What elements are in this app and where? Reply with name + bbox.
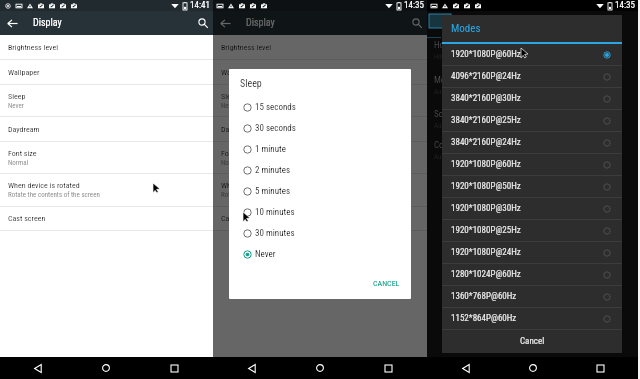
staticText: Display (33, 17, 62, 29)
staticText: 1920*1080P@50Hz (451, 181, 521, 192)
staticText: 1280*1024P@60Hz (451, 269, 521, 280)
staticText: CANCEL (373, 279, 400, 288)
button[interactable]: 1360*768P@60Hz (442, 286, 622, 307)
button[interactable]: 1920*1080P@50Hz (442, 176, 622, 197)
button[interactable]: 30 seconds (229, 118, 411, 139)
staticText: Rotate the contents of the screen (221, 191, 313, 199)
button[interactable]: Brightness level (0, 35, 213, 59)
staticText: 1920*1080P@60Hz (451, 159, 521, 170)
button[interactable]: Sleep (0, 85, 213, 116)
staticText: Cast screen (221, 214, 259, 223)
button[interactable]: Recent apps (163, 357, 185, 379)
button[interactable]: 1920*1080P@25Hz (442, 220, 622, 241)
staticText: 3840*2160P@24Hz (451, 137, 521, 148)
staticText: 14:41 (190, 0, 210, 11)
staticText: 1152*864P@60Hz (451, 313, 517, 324)
button[interactable]: 3840*2160P@25Hz (442, 110, 622, 131)
staticText: Never (221, 102, 237, 110)
button[interactable]: Wallpaper (0, 60, 213, 84)
staticText: Normal (8, 159, 29, 167)
button[interactable]: Daydream (213, 117, 427, 141)
button[interactable]: 2 minutes (229, 160, 411, 181)
button[interactable]: Recent apps (589, 357, 611, 379)
staticText: When device is rotated (221, 181, 293, 190)
button[interactable]: 1280*1024P@60Hz (442, 264, 622, 285)
button[interactable]: Sleep (213, 85, 427, 116)
staticText: 2 minutes (255, 165, 291, 176)
button[interactable]: 15 seconds (229, 97, 411, 118)
button[interactable]: 3840*2160P@24Hz (442, 132, 622, 153)
staticText: Daydream (8, 125, 40, 134)
button[interactable]: Never (229, 244, 411, 265)
staticText: 4096*2160P@24Hz (451, 71, 521, 82)
button[interactable]: Back (241, 357, 263, 379)
button[interactable]: Daydream (0, 117, 213, 141)
staticText: Auto (434, 153, 447, 161)
staticText: 14:35 (404, 0, 424, 11)
staticText: Display (246, 17, 275, 29)
button[interactable]: Cast screen (213, 207, 427, 230)
button[interactable]: Navigate up (213, 11, 237, 35)
button[interactable]: 4096*2160P@24Hz (442, 66, 622, 87)
button[interactable]: 1920*1080P@30Hz (442, 198, 622, 219)
staticText: Never (8, 102, 24, 110)
staticText: Screen (434, 109, 459, 120)
staticText: 30 seconds (255, 123, 296, 134)
staticText: Cast screen (8, 214, 46, 223)
button[interactable]: 10 minutes (229, 202, 411, 223)
staticText: Sleep (240, 78, 262, 90)
staticText: Cancel (520, 336, 545, 347)
button[interactable]: When device is rotated (0, 174, 213, 206)
staticText: Sleep (221, 92, 239, 101)
staticText: Normal (221, 159, 242, 167)
staticText: 1920*1080P@25Hz (451, 225, 521, 236)
staticText: Daydream (221, 125, 253, 134)
staticText: Modes (451, 22, 481, 35)
staticText: 3840*2160P@30Hz (451, 93, 521, 104)
button[interactable]: Brightness level (213, 35, 427, 59)
staticText: 14:35 (404, 0, 424, 11)
button[interactable]: Search (407, 11, 427, 35)
button[interactable]: Font size (213, 142, 427, 173)
button[interactable]: 5 minutes (229, 181, 411, 202)
button[interactable]: 30 minutes (229, 223, 411, 244)
staticText: Rotate the contents of the screen (8, 191, 100, 199)
staticText: Font size (221, 149, 250, 158)
staticText: 3840*2160P@25Hz (451, 115, 521, 126)
button[interactable]: CANCEL (362, 274, 411, 293)
button[interactable]: Wallpaper (213, 60, 427, 84)
staticText: Wallpaper (221, 68, 253, 77)
staticText: 10 minutes (255, 207, 295, 218)
staticText: Hdmi output (434, 53, 469, 61)
staticText: 15 seconds (255, 102, 296, 113)
button[interactable]: 3840*2160P@30Hz (442, 88, 622, 109)
staticText: Colour (434, 140, 458, 151)
staticText: Font size (8, 149, 37, 158)
button[interactable]: Cancel (442, 330, 622, 353)
button[interactable]: Navigate up (0, 11, 24, 35)
button[interactable]: 1 minute (229, 139, 411, 160)
button[interactable]: 1920*1080P@24Hz (442, 242, 622, 263)
button[interactable]: Home (522, 357, 544, 379)
button[interactable]: Home (95, 357, 117, 379)
button[interactable]: Recent apps (377, 357, 399, 379)
button[interactable]: Back (27, 357, 49, 379)
staticText: 1 minute (255, 144, 286, 155)
button[interactable]: Home (309, 357, 331, 379)
staticText: 1920*1080P@60Hz (451, 49, 521, 60)
staticText: Auto (434, 122, 447, 130)
button[interactable]: Cast screen (0, 207, 213, 230)
button[interactable]: 1920*1080P@60Hz (442, 44, 622, 65)
button[interactable]: When device is rotated (213, 174, 427, 206)
staticText: 1920*1080P@24Hz (451, 247, 521, 258)
button[interactable]: Back (455, 357, 477, 379)
button[interactable]: 1152*864P@60Hz (442, 308, 622, 329)
staticText: Mode (434, 75, 454, 86)
staticText: 1920*1080P@30Hz (451, 203, 521, 214)
button[interactable]: Search (193, 11, 213, 35)
staticText: Hdmi (434, 40, 453, 51)
button[interactable]: Font size (0, 142, 213, 173)
staticText: Auto (434, 88, 447, 96)
button[interactable]: 1920*1080P@60Hz (442, 154, 622, 175)
staticText: 5 minutes (255, 186, 291, 197)
